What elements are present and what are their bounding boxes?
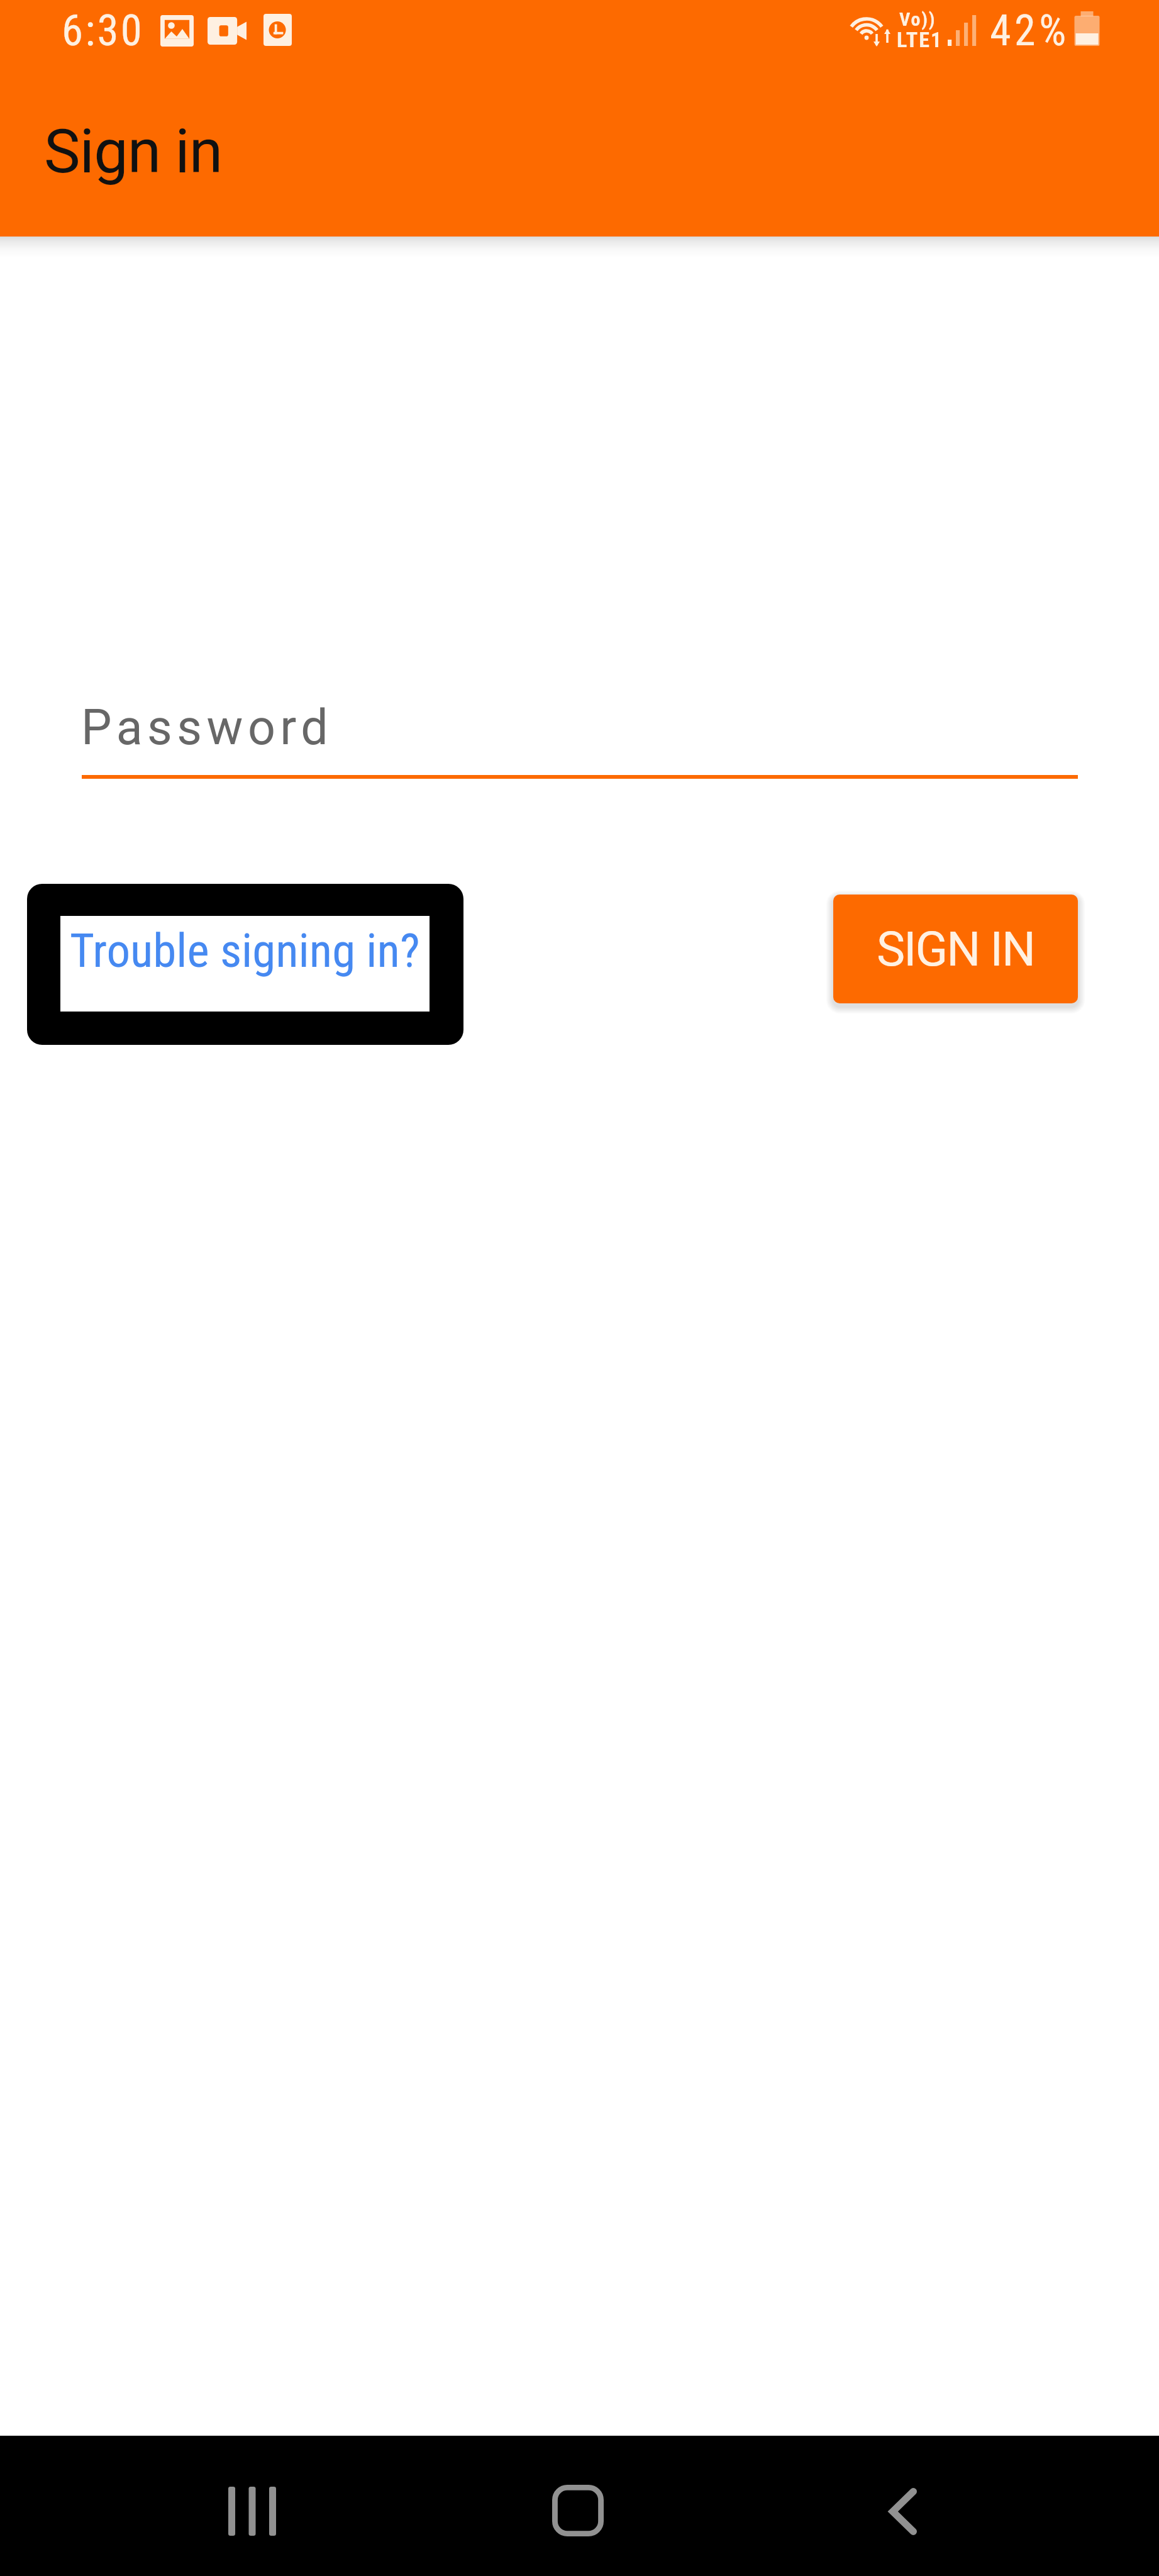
button[interactable]: Back xyxy=(828,2447,979,2576)
staticText: SIGN IN xyxy=(877,921,1034,977)
staticText: Trouble signing in? xyxy=(70,923,420,978)
button[interactable]: Trouble signing in? xyxy=(27,884,463,1045)
button[interactable]: Recent apps xyxy=(177,2446,328,2576)
staticText: 42% xyxy=(990,6,1070,56)
staticText: Vo)) xyxy=(899,8,936,30)
staticText: 6:30 xyxy=(62,5,145,56)
staticText: Password xyxy=(81,700,333,756)
staticText: LTE1 xyxy=(897,27,943,52)
staticText: Sign in xyxy=(44,116,223,187)
button[interactable]: Home xyxy=(502,2445,653,2576)
button[interactable]: SIGN IN xyxy=(833,895,1078,1003)
